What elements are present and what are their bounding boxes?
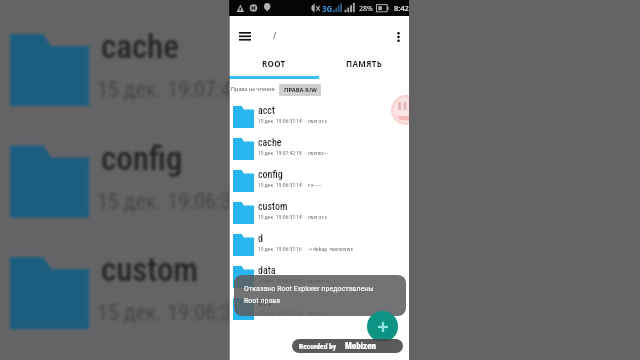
staticText: rwxrwx--x — [308, 278, 329, 285]
button[interactable]: cache — [229, 128, 409, 160]
staticText: 15 дек. 19:06:37:14 — [258, 278, 302, 285]
staticText: ПРАВА R/W — [284, 86, 317, 94]
staticText: rwxrwx--- — [308, 150, 328, 157]
staticText: 15 дек. 19:06:37:14 — [258, 118, 302, 125]
staticText: rwxr-xr-x — [308, 310, 327, 317]
staticText: d — [258, 233, 263, 245]
staticText: 28% — [359, 4, 373, 14]
button[interactable]: data — [229, 256, 409, 288]
staticText: 15 дек. 19:06:37:14 — [258, 182, 302, 189]
staticText: Mobizen — [345, 341, 376, 352]
button[interactable]: acct — [229, 96, 409, 128]
staticText: 15 дек. 19:06:37:14 — [258, 310, 302, 317]
staticText: cache — [101, 27, 179, 66]
button[interactable]: ПАМЯТЬ — [319, 47, 409, 76]
staticText: 3G — [322, 3, 333, 14]
button[interactable]: ПРАВА R/W — [279, 84, 321, 96]
staticText: cache — [258, 137, 282, 149]
staticText: acct — [258, 105, 275, 117]
staticText: rwxr-xr-x — [308, 214, 327, 221]
staticText: data — [258, 265, 276, 277]
staticText: / — [273, 29, 277, 41]
staticText: Root права — [244, 296, 281, 305]
staticText: Права на чтение — [231, 85, 275, 92]
button[interactable]: dev — [229, 288, 409, 320]
button[interactable]: d — [229, 224, 409, 256]
staticText: 8:42 — [394, 3, 409, 13]
staticText: 15 дек. 19:06:37:14 — [258, 214, 302, 221]
staticText: 15 дек. 19:06:37:14 — [97, 300, 270, 326]
button[interactable]: More options — [391, 26, 405, 47]
staticText: config — [258, 169, 283, 181]
staticText: custom — [101, 250, 199, 289]
button[interactable]: Menu — [234, 26, 255, 47]
button[interactable]: Add — [367, 311, 398, 342]
staticText: 15 дек. 19:07:42:18 — [258, 150, 302, 157]
staticText: dev — [258, 297, 273, 309]
button[interactable]: config — [229, 160, 409, 192]
staticText: custom — [258, 201, 288, 213]
staticText: Recorded by — [299, 342, 337, 351]
staticText: r-x------ — [308, 182, 322, 189]
staticText: rwxr-xr-x — [308, 118, 327, 125]
button[interactable]: ROOT — [229, 47, 319, 76]
staticText: Отказано Root Explorer предоставлены — [244, 284, 374, 293]
button[interactable]: custom — [229, 192, 409, 224]
staticText: -> debug rwxrwxrwx — [308, 246, 353, 253]
staticText: ROOT — [262, 58, 286, 69]
staticText: 15 дек. 19:06:37:16 — [258, 246, 302, 253]
staticText: 15 дек. 19:07:42:18 — [97, 77, 270, 103]
staticText: 15 дек. 19:06:37:14 — [97, 189, 270, 215]
staticText: ПАМЯТЬ — [346, 58, 383, 69]
staticText: config — [101, 139, 183, 178]
